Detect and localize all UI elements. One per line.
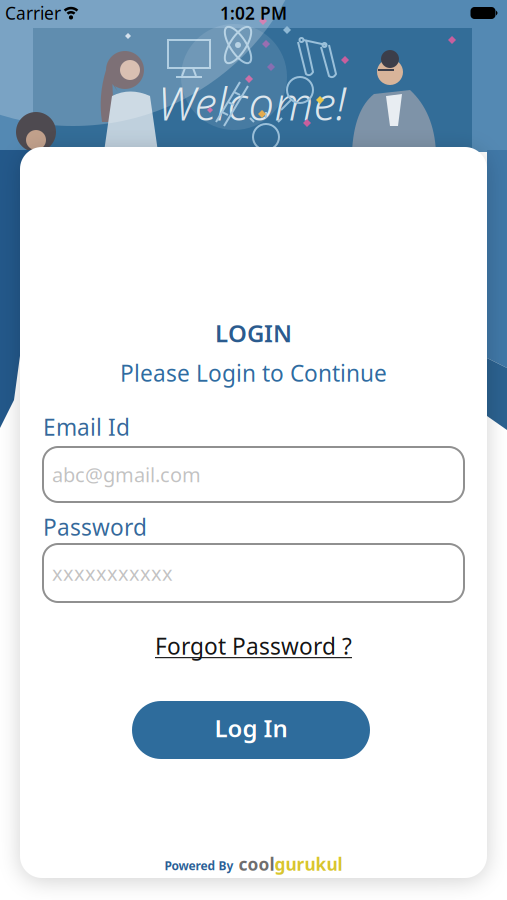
button[interactable]: Forgot Password ? — [155, 631, 352, 661]
staticText: cool — [238, 852, 274, 875]
staticText: Powered By — [164, 858, 233, 873]
staticText: 1:02 PM — [220, 1, 287, 24]
staticText: Carrier — [5, 1, 61, 24]
staticText: Forgot Password ? — [155, 631, 352, 661]
staticText: xxxxxxxxxxx — [52, 560, 173, 586]
button[interactable]: Log In — [132, 701, 370, 759]
staticText: gurukul — [274, 852, 342, 875]
staticText: Welcome! — [157, 73, 346, 133]
staticText: Log In — [214, 712, 287, 744]
staticText: LOGIN — [215, 317, 292, 349]
staticText: Password — [43, 512, 147, 542]
staticText: Please Login to Continue — [120, 358, 387, 388]
staticText: abc@gmail.com — [52, 461, 201, 488]
staticText: Email Id — [43, 412, 130, 442]
